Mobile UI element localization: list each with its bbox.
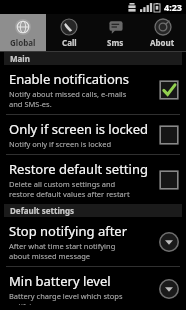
staticText: Sms: [107, 37, 124, 48]
staticText: Min battery level: [9, 272, 111, 290]
button[interactable]: Stop notifying after: [0, 217, 186, 266]
staticText: Battery charge level which stops notifyi…: [9, 291, 123, 305]
button[interactable]: Unchecked: [158, 169, 180, 191]
staticText: Call: [62, 37, 77, 48]
staticText: Main: [10, 53, 30, 64]
button[interactable]: Restore default setting: [0, 155, 186, 204]
button[interactable]: Only if screen is locked: [0, 115, 186, 154]
staticText: 4:23: [164, 1, 182, 13]
button[interactable]: Checked: [158, 79, 180, 101]
staticText: Delete all custom settings and restore d…: [9, 179, 130, 199]
button[interactable]: Enable notifications: [0, 65, 186, 114]
staticText: Default settings: [10, 205, 75, 216]
button[interactable]: Open list: [158, 278, 180, 300]
staticText: Global: [10, 37, 36, 48]
button[interactable]: About: [139, 14, 186, 51]
staticText: Restore default setting: [9, 160, 148, 178]
staticText: Enable notifications: [9, 70, 130, 88]
button[interactable]: Unchecked: [158, 124, 180, 146]
staticText: After what time start notifying about mi…: [9, 241, 116, 261]
staticText: Stop notifying after: [9, 222, 128, 240]
button[interactable]: Open list: [158, 231, 180, 253]
staticText: About: [150, 37, 175, 48]
button[interactable]: Global: [0, 14, 46, 51]
staticText: Notify only if screen is locked: [9, 139, 112, 149]
button[interactable]: Sms: [92, 14, 139, 51]
staticText: Only if screen is locked: [9, 120, 149, 138]
button[interactable]: Min battery level: [0, 267, 186, 310]
button[interactable]: Call: [46, 14, 92, 51]
staticText: Notify about missed calls, e-mails and S…: [9, 89, 127, 109]
